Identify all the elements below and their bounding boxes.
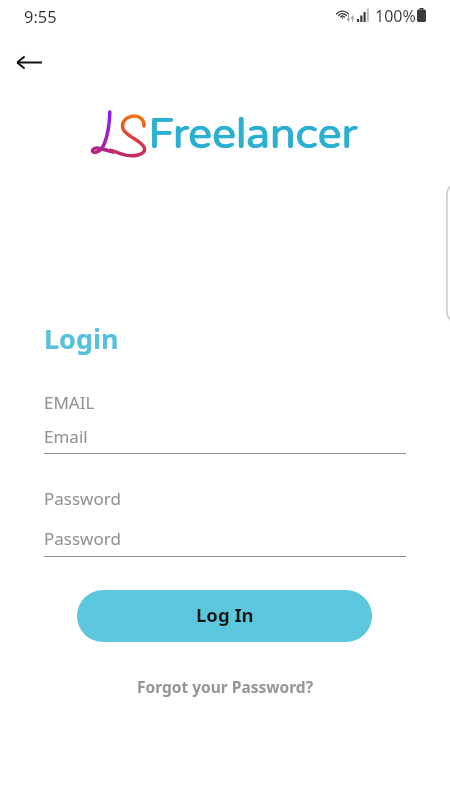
staticText: Email (44, 425, 88, 448)
button[interactable]: Email (44, 419, 406, 454)
staticText: Freelancer (148, 109, 358, 160)
button[interactable]: Back (5, 38, 53, 86)
button[interactable]: Password (44, 521, 406, 557)
button[interactable]: Log In (77, 590, 372, 642)
staticText: Password (44, 487, 121, 510)
staticText: Login (44, 320, 119, 357)
staticText: Freelancer (149, 109, 359, 160)
staticText: Password (44, 527, 121, 550)
staticText: 100% (375, 5, 416, 27)
staticText: Forgot your Password? (137, 676, 314, 697)
staticText: Log In (196, 602, 254, 627)
staticText: EMAIL (44, 391, 95, 414)
button[interactable]: Forgot your Password? (115, 669, 335, 703)
staticText: 9:55 (24, 5, 57, 27)
